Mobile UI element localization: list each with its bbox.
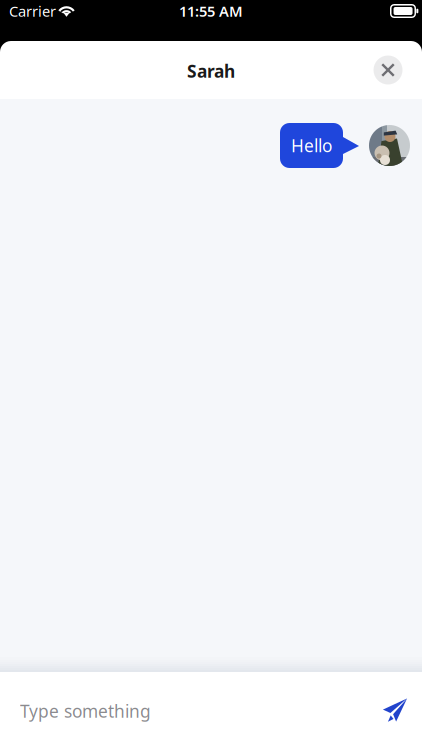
staticText: 11:55 AM [179, 1, 243, 21]
staticText: Hello [291, 134, 332, 157]
staticText: Type something [20, 699, 151, 722]
button[interactable]: Send [372, 688, 418, 734]
staticText: Carrier [9, 1, 56, 21]
button[interactable]: Close [368, 48, 408, 92]
staticText: Sarah [187, 59, 235, 82]
